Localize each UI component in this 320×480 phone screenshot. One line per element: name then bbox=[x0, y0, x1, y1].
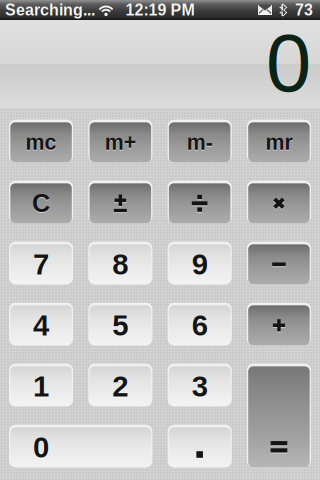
staticText: 2 bbox=[112, 371, 128, 403]
button[interactable]: Equals bbox=[248, 365, 310, 466]
staticText: 8 bbox=[112, 249, 128, 281]
button[interactable]: 0 bbox=[10, 426, 151, 466]
button[interactable]: Multiply bbox=[248, 182, 310, 222]
staticText: 8 bbox=[112, 248, 128, 280]
button[interactable]: 2 bbox=[90, 365, 151, 405]
staticText: mr bbox=[265, 131, 292, 154]
staticText: 1 bbox=[33, 370, 49, 402]
staticText: mr bbox=[265, 132, 292, 155]
staticText: m- bbox=[187, 132, 213, 155]
button[interactable]: 5 bbox=[90, 304, 151, 344]
staticText: 0 bbox=[33, 432, 49, 464]
staticText: 9 bbox=[192, 248, 208, 280]
button[interactable]: m- bbox=[169, 121, 230, 161]
staticText: 0 bbox=[266, 19, 311, 107]
staticText: 4 bbox=[33, 310, 49, 342]
staticText: 2 bbox=[112, 370, 128, 402]
button[interactable]: Minus bbox=[248, 243, 310, 283]
staticText: 6 bbox=[192, 310, 208, 342]
staticText: 5 bbox=[112, 309, 128, 341]
button[interactable]: 8 bbox=[90, 243, 151, 283]
staticText: Searching... bbox=[5, 1, 95, 19]
button[interactable]: m+ bbox=[90, 121, 151, 161]
button[interactable]: Plus bbox=[248, 304, 310, 344]
staticText: mc bbox=[26, 131, 57, 154]
staticText: 12:19 PM bbox=[125, 1, 194, 19]
staticText: C bbox=[32, 189, 50, 217]
staticText: 7 bbox=[33, 248, 49, 280]
staticText: 7 bbox=[33, 249, 49, 281]
button[interactable]: mr bbox=[248, 121, 310, 161]
button[interactable]: C bbox=[10, 182, 72, 222]
button[interactable]: mc bbox=[10, 121, 72, 161]
button[interactable]: Divide bbox=[169, 182, 230, 222]
staticText: 73 bbox=[295, 1, 313, 19]
button[interactable]: 4 bbox=[10, 304, 72, 344]
staticText: 1 bbox=[33, 371, 49, 403]
button[interactable]: Plus minus bbox=[90, 182, 151, 222]
staticText: 5 bbox=[112, 310, 128, 342]
staticText: 0 bbox=[33, 431, 49, 463]
staticText: m+ bbox=[105, 132, 136, 155]
staticText: C bbox=[32, 190, 50, 218]
button[interactable]: 9 bbox=[169, 243, 230, 283]
button[interactable]: 1 bbox=[10, 365, 72, 405]
staticText: 9 bbox=[192, 249, 208, 281]
staticText: 3 bbox=[192, 371, 208, 403]
staticText: 6 bbox=[192, 309, 208, 341]
staticText: m+ bbox=[105, 131, 136, 154]
staticText: mc bbox=[26, 132, 57, 155]
staticText: m- bbox=[187, 131, 213, 154]
button[interactable]: 6 bbox=[169, 304, 230, 344]
button[interactable]: 7 bbox=[10, 243, 72, 283]
button[interactable]: 3 bbox=[169, 365, 230, 405]
staticText: 4 bbox=[33, 309, 49, 341]
staticText: 3 bbox=[192, 370, 208, 402]
button[interactable]: Decimal point bbox=[169, 426, 230, 466]
